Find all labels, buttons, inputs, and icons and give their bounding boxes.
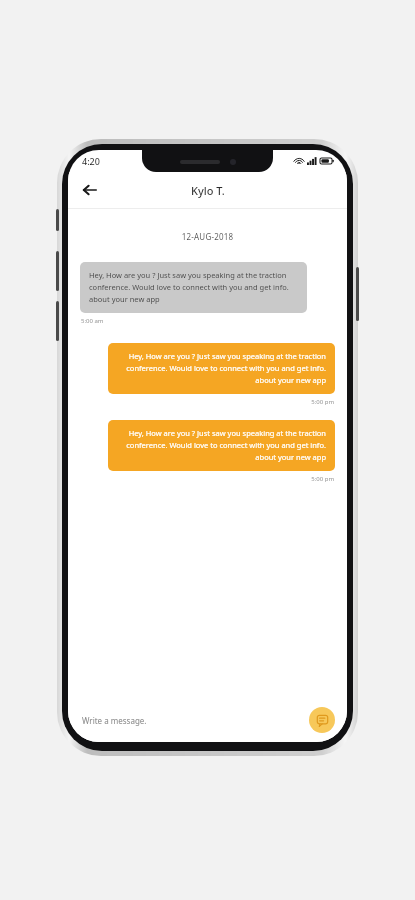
staticText: 5:00 pm (108, 398, 334, 406)
staticText: Kylo T. (191, 183, 225, 198)
button[interactable]: Hey, How are you ? Just saw you speaking… (108, 343, 335, 394)
staticText: 12-AUG-2018 (68, 231, 347, 242)
button[interactable]: Hey, How are you ? Just saw you speaking… (80, 262, 307, 313)
button[interactable]: Write a message. (82, 715, 147, 726)
button[interactable]: Send message (309, 707, 335, 733)
staticText: Hey, How are you ? Just saw you speaking… (89, 270, 298, 305)
button[interactable]: Hey, How are you ? Just saw you speaking… (108, 420, 335, 471)
staticText: Hey, How are you ? Just saw you speaking… (117, 351, 326, 386)
staticText: Write a message. (82, 715, 147, 726)
button[interactable]: Back (76, 176, 104, 204)
staticText: 5:00 am (81, 317, 104, 325)
staticText: Hey, How are you ? Just saw you speaking… (117, 428, 326, 463)
staticText: 5:00 pm (108, 475, 334, 483)
staticText: 4:20 (82, 155, 100, 167)
